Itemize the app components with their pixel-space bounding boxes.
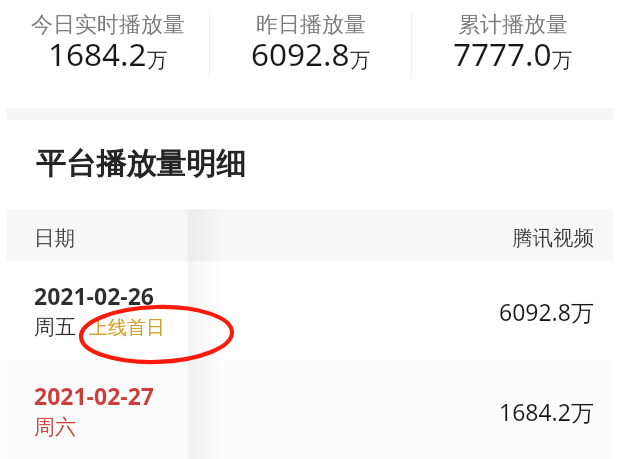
other: Highlight annotation	[76, 301, 238, 369]
staticText: 平台播放量明细	[36, 145, 246, 183]
staticText: 上线首日	[89, 316, 165, 340]
staticText: 日期	[34, 225, 75, 251]
staticText: 2021-02-26	[34, 280, 154, 311]
staticText: 万	[350, 47, 371, 73]
staticText: 1684.2	[48, 32, 147, 75]
staticText: 今日实时播放量	[31, 11, 185, 39]
button[interactable]: 2021-02-27	[7, 361, 613, 459]
staticText: 6092.8	[251, 32, 350, 75]
button[interactable]: 昨日播放量	[210, 0, 411, 105]
staticText: 昨日播放量	[256, 11, 366, 39]
staticText: 万	[552, 47, 573, 73]
staticText: 周五	[34, 314, 76, 340]
staticText: 累计播放量	[458, 11, 568, 39]
staticText: 腾讯视频	[512, 225, 594, 251]
staticText: 2021-02-27	[34, 380, 154, 411]
button[interactable]: 日期	[7, 209, 613, 261]
button[interactable]: 今日实时播放量	[7, 0, 209, 105]
button[interactable]: 累计播放量	[412, 0, 613, 105]
staticText: 万	[147, 47, 168, 73]
staticText: 周六	[34, 414, 76, 440]
button[interactable]: 2021-02-26	[7, 261, 613, 361]
staticText: 1684.2万	[499, 396, 594, 427]
staticText: 6092.8万	[499, 296, 594, 327]
staticText: 7777.0	[453, 32, 552, 75]
